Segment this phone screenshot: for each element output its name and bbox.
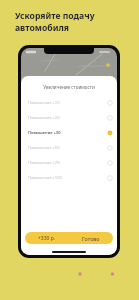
button[interactable]: +330 р. xyxy=(25,232,69,244)
button[interactable]: Готово xyxy=(69,232,113,244)
staticText: автомобиля xyxy=(15,22,69,34)
staticText: Повышение +70 xyxy=(28,160,107,165)
staticText: Повышение +20 xyxy=(28,115,107,120)
button[interactable]: Повышение +50 xyxy=(21,140,117,155)
button[interactable]: Повышение +100 xyxy=(21,170,117,185)
staticText: Увеличение стоимости xyxy=(21,84,117,90)
button[interactable]: Повышение +30 xyxy=(21,125,117,140)
staticText: Готово xyxy=(82,235,100,242)
staticText: Повышение +10 xyxy=(28,100,107,105)
button[interactable]: Повышение +20 xyxy=(21,110,117,125)
staticText: +330 р. xyxy=(38,235,56,242)
staticText: Ускоряйте подачу xyxy=(15,10,95,22)
button[interactable]: Повышение +70 xyxy=(21,155,117,170)
staticText: Повышение +30 xyxy=(28,130,107,135)
staticText: Повышение +50 xyxy=(28,145,107,150)
button[interactable]: Повышение +10 xyxy=(21,95,117,110)
staticText: Повышение +100 xyxy=(28,175,107,180)
